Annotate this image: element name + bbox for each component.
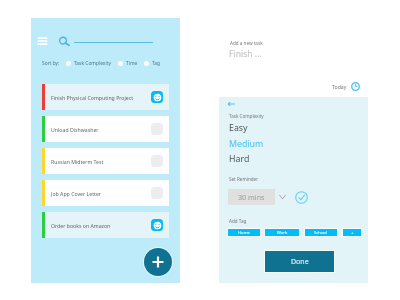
button[interactable]: Done (264, 250, 335, 273)
staticText: 30 mins (238, 192, 265, 202)
button[interactable]: Home (227, 228, 261, 237)
staticText: + (351, 230, 354, 236)
staticText: Task Complexity (229, 113, 264, 119)
staticText: Done (291, 257, 309, 267)
staticText: Finish ... (229, 48, 262, 60)
staticText: Set Reminder (229, 176, 259, 182)
button[interactable]: Today (332, 82, 360, 91)
button[interactable]: School (304, 228, 338, 237)
button[interactable]: Menu (38, 37, 47, 45)
staticText: Home (238, 230, 250, 236)
staticText: Today (332, 83, 347, 90)
staticText: Medium (229, 138, 264, 150)
staticText: Task Complexity (74, 60, 111, 67)
button[interactable]: Add task (143, 247, 173, 277)
button[interactable]: Time (118, 60, 138, 67)
button[interactable]: Search (58, 35, 69, 46)
staticText: Order books on Amazon (51, 222, 151, 229)
staticText: Add Tag (229, 218, 247, 224)
staticText: Unload Dishwasher (51, 126, 151, 133)
staticText: Add a new task (230, 40, 263, 46)
staticText: Tag (152, 60, 161, 67)
staticText: Work (277, 230, 288, 236)
button[interactable]: Back (227, 100, 236, 107)
button[interactable]: Unload Dishwasher (42, 116, 169, 142)
staticText: Sort by: (42, 60, 60, 67)
button[interactable]: + (342, 228, 362, 237)
button[interactable]: Confirm reminder (295, 191, 308, 204)
button[interactable]: Tag (144, 60, 161, 67)
staticText: Finish Physical Computing Project (51, 94, 151, 101)
button[interactable]: Expand (279, 194, 286, 200)
staticText: Hard (229, 153, 250, 165)
button[interactable]: Task Complexity (66, 60, 111, 67)
staticText: Russian Midterm Test (51, 158, 151, 165)
staticText: Job App Cover Letter (51, 190, 151, 197)
staticText: Easy (229, 122, 248, 134)
button[interactable]: Job App Cover Letter (42, 180, 169, 206)
button[interactable]: 30 mins (228, 189, 275, 205)
staticText: Time (126, 60, 138, 67)
staticText: School (314, 230, 328, 236)
button[interactable]: Work (264, 228, 300, 237)
button[interactable]: Finish Physical Computing Project (42, 84, 169, 110)
button[interactable]: Russian Midterm Test (42, 148, 169, 174)
button[interactable]: Order books on Amazon (42, 212, 169, 238)
